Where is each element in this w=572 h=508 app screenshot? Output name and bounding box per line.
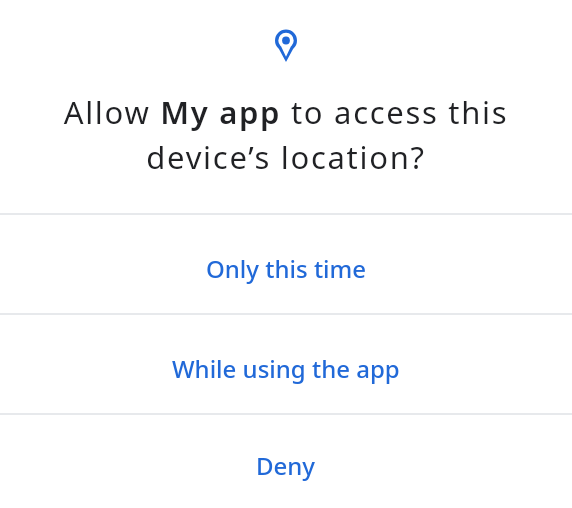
staticText: While using the app	[172, 352, 400, 385]
button[interactable]: Only this time	[0, 215, 572, 313]
staticText: Allow My app to access this device’s loc…	[0, 91, 572, 178]
button[interactable]: Deny	[0, 415, 572, 508]
staticText: Deny	[256, 449, 316, 482]
staticText: Only this time	[206, 252, 367, 285]
button[interactable]: While using the app	[0, 315, 572, 413]
